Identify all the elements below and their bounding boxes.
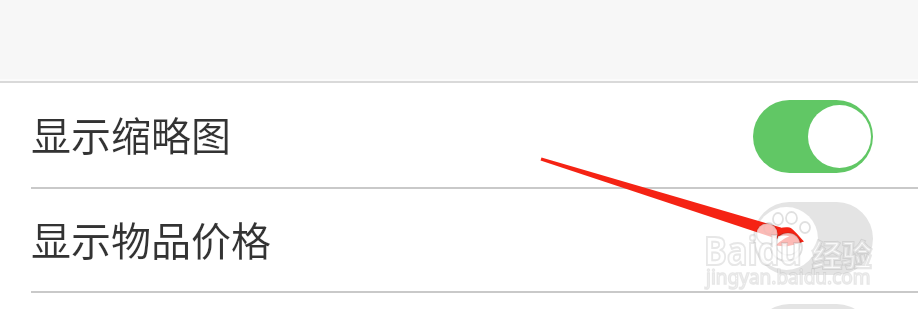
- staticText: Baidu: [704, 222, 802, 276]
- staticText: 显示缩略图: [31, 105, 231, 163]
- button[interactable]: 显示物品价格: [0, 189, 918, 291]
- button[interactable]: Switch on: [753, 100, 873, 173]
- button[interactable]: Switch off: [753, 304, 873, 309]
- button[interactable]: 显示缩略图: [0, 83, 918, 187]
- staticText: 经验: [812, 231, 872, 274]
- staticText: Baidu: [704, 222, 802, 276]
- button[interactable]: Switch off: [753, 202, 873, 275]
- staticText: 经验: [812, 231, 872, 274]
- staticText: jingyan.baidu.com: [706, 264, 871, 290]
- staticText: jingyan.baidu.com: [706, 264, 871, 290]
- staticText: 显示物品价格: [31, 210, 271, 268]
